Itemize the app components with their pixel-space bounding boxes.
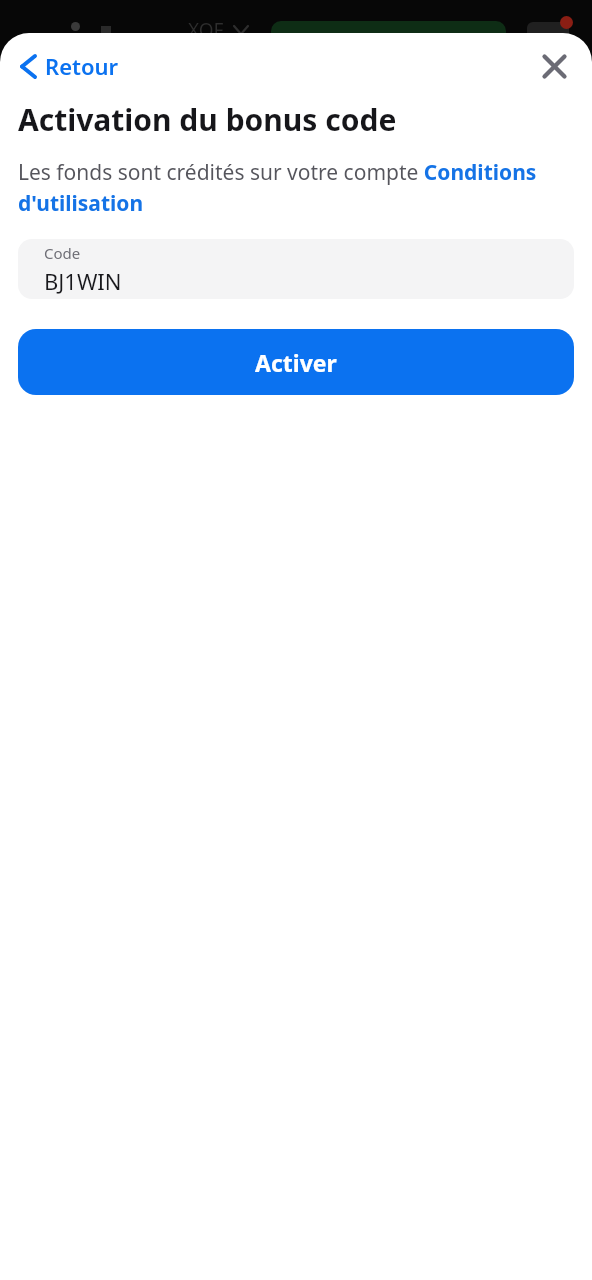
- button[interactable]: Fermer: [534, 46, 574, 86]
- staticText: Les fonds sont crédités sur votre compte…: [18, 158, 574, 217]
- button[interactable]: Activer: [18, 329, 574, 395]
- staticText: XOF: [188, 17, 224, 43]
- button[interactable]: Code: [18, 239, 574, 299]
- staticText: Retour: [45, 51, 119, 81]
- staticText: Activer: [255, 347, 337, 378]
- staticText: Activation du bonus code: [18, 99, 397, 140]
- button[interactable]: Retour: [14, 45, 131, 87]
- staticText: Code: [44, 243, 81, 263]
- staticText: BJ1WIN: [44, 266, 122, 296]
